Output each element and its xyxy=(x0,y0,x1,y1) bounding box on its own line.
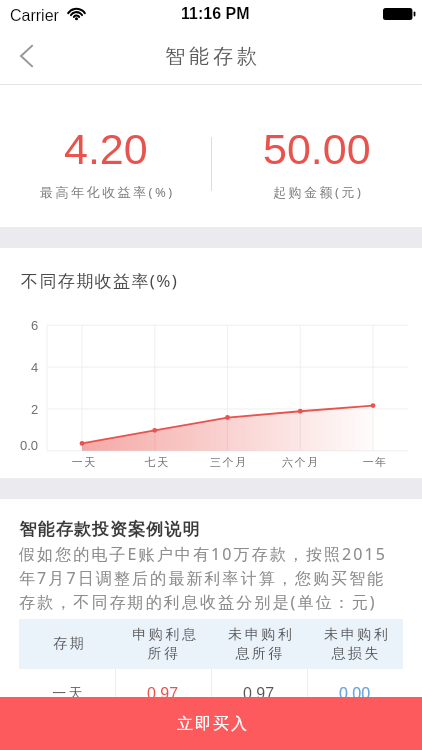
staticText: 七天 xyxy=(144,455,169,469)
button[interactable]: Back xyxy=(0,28,52,84)
staticText: 未申购利 息所得 xyxy=(227,626,293,662)
staticText: Carrier xyxy=(10,7,59,25)
staticText: 6 xyxy=(31,318,39,333)
staticText: 一天 xyxy=(51,685,84,703)
staticText: 一天 xyxy=(71,455,96,469)
staticText: 0.0 xyxy=(20,438,39,453)
staticText: 六个月 xyxy=(282,455,320,469)
staticText: 一年 xyxy=(362,455,387,469)
staticText: 未申购利 息损失 xyxy=(323,626,389,662)
staticText: 假如您的电子E账户中有10万存款，按照2015 年7月7日调整后的最新利率计算，… xyxy=(19,543,388,613)
staticText: 0.00 xyxy=(339,685,371,703)
staticText: 4.20 xyxy=(64,125,148,173)
staticText: 50.00 xyxy=(263,125,371,173)
staticText: 不同存期收益率(%) xyxy=(21,269,179,292)
staticText: 2 xyxy=(31,402,39,417)
staticText: 11:16 PM xyxy=(181,5,250,23)
staticText: 0.97 xyxy=(243,685,275,703)
staticText: 智能存款 xyxy=(163,44,259,69)
staticText: 最高年化收益率(%) xyxy=(40,183,175,201)
staticText: 立即买入 xyxy=(176,714,248,734)
staticText: 0.97 xyxy=(147,685,179,703)
staticText: 智能存款投资案例说明 xyxy=(19,519,200,540)
staticText: 存期 xyxy=(52,635,85,653)
button[interactable]: 立即买入 xyxy=(0,697,422,750)
staticText: 4 xyxy=(31,360,39,375)
staticText: 三个月 xyxy=(210,455,248,469)
staticText: 申购利息 所得 xyxy=(131,626,197,662)
staticText: 起购金额(元) xyxy=(273,183,364,201)
